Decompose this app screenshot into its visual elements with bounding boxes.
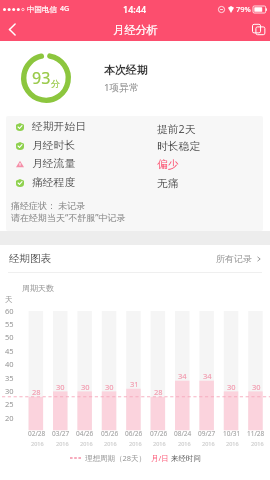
staticText: 月经流量 — [32, 157, 76, 171]
staticText: 10/31 — [223, 429, 241, 438]
button[interactable]: Back — [0, 18, 24, 41]
staticText: 45 — [5, 346, 14, 356]
staticText: 天 — [5, 295, 13, 304]
staticText: 07/26 — [150, 429, 168, 438]
staticText: 痛经症状： 未记录 — [11, 199, 86, 211]
staticText: 周期天数 — [22, 283, 54, 293]
staticText: 28 — [32, 387, 41, 397]
staticText: 06/26 — [125, 429, 143, 438]
staticText: 2016 — [251, 440, 264, 447]
staticText: 经期图表 — [9, 252, 51, 265]
staticText: 2016 — [178, 440, 191, 447]
staticText: 93 — [32, 67, 51, 89]
staticText: 14:44 — [123, 3, 147, 15]
staticText: 痛经程度 — [32, 176, 76, 190]
staticText: 11/28 — [247, 429, 265, 438]
staticText: 79% — [236, 4, 251, 14]
staticText: 05/26 — [101, 429, 119, 438]
staticText: 03/27 — [52, 429, 70, 438]
staticText: 4G — [60, 4, 70, 14]
staticText: 31 — [130, 379, 139, 389]
staticText: 34 — [203, 371, 212, 381]
staticText: 2016 — [31, 440, 44, 447]
staticText: 2016 — [202, 440, 215, 447]
staticText: 所有记录 — [216, 253, 252, 264]
staticText: 30 — [5, 386, 14, 396]
staticText: 08/24 — [174, 429, 192, 438]
staticText: 55 — [5, 319, 14, 329]
staticText: 中国电信 — [27, 5, 57, 14]
staticText: 月/日 — [151, 453, 169, 463]
staticText: 60 — [5, 306, 14, 316]
staticText: 理想周期（28天） — [85, 453, 147, 463]
staticText: 09/27 — [198, 429, 216, 438]
staticText: 请在经期当天“不舒服”中记录 — [11, 211, 126, 223]
staticText: 40 — [5, 359, 14, 369]
staticText: 无痛 — [157, 177, 179, 191]
staticText: 本次经期 — [104, 64, 148, 78]
staticText: 2016 — [104, 440, 117, 447]
staticText: 偏少 — [157, 158, 179, 172]
staticText: 35 — [5, 373, 14, 383]
button[interactable]: 月经时长 — [6, 136, 263, 155]
staticText: 2016 — [226, 440, 239, 447]
staticText: 分 — [51, 78, 60, 89]
staticText: 34 — [178, 371, 187, 381]
staticText: 04/26 — [76, 429, 94, 438]
staticText: 时长稳定 — [157, 140, 201, 154]
staticText: 50 — [5, 332, 14, 342]
staticText: 2016 — [56, 440, 69, 447]
staticText: 30 — [105, 382, 114, 392]
staticText: 2016 — [80, 440, 93, 447]
staticText: 提前2天 — [157, 121, 196, 136]
staticText: 30 — [56, 382, 65, 392]
staticText: 20 — [5, 413, 14, 423]
staticText: 2016 — [129, 440, 142, 447]
staticText: 30 — [227, 382, 236, 392]
staticText: 30 — [252, 382, 261, 392]
staticText: 经期开始日 — [32, 120, 86, 134]
staticText: 月经分析 — [113, 23, 158, 37]
button[interactable]: 痛经程度 — [6, 173, 263, 192]
staticText: 25 — [5, 399, 14, 409]
button[interactable]: 经期开始日 — [6, 117, 263, 136]
button[interactable]: 经期图表 — [0, 245, 270, 272]
button[interactable]: 月经流量 — [6, 154, 263, 173]
staticText: 月经时长 — [32, 139, 76, 153]
staticText: 2016 — [153, 440, 166, 447]
staticText: 28 — [154, 387, 163, 397]
staticText: 02/28 — [28, 429, 46, 438]
staticText: 来经时间 — [171, 454, 201, 463]
staticText: 30 — [81, 382, 90, 392]
staticText: 1项异常 — [104, 81, 139, 94]
button[interactable]: Share — [246, 18, 270, 41]
